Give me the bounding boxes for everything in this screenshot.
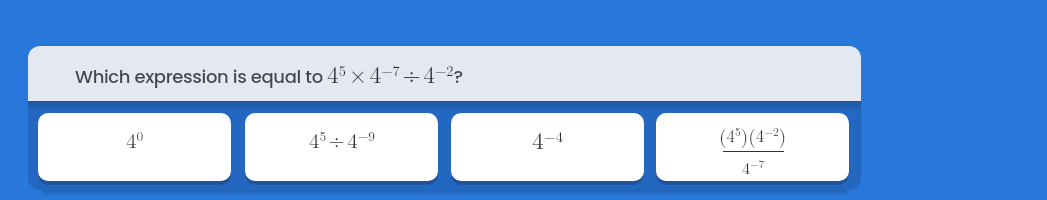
staticText: 4−7 [742,155,765,178]
button[interactable]: 40 [38,113,231,181]
button[interactable]: (45)(4−2) [656,113,849,181]
button[interactable]: Which expression is equal to 45 × 4−7 ÷ … [28,46,861,101]
button[interactable]: 45 ÷ 4−9 [245,113,438,181]
staticText: 45 ÷ 4−9 [309,124,375,154]
button[interactable]: 4−4 [451,113,644,181]
staticText: Which expression is equal to 45 × 4−7 ÷ … [75,57,464,90]
staticText: (45)(4−2) [719,121,787,148]
staticText: 40 [126,124,144,154]
staticText: 4−4 [532,123,563,156]
